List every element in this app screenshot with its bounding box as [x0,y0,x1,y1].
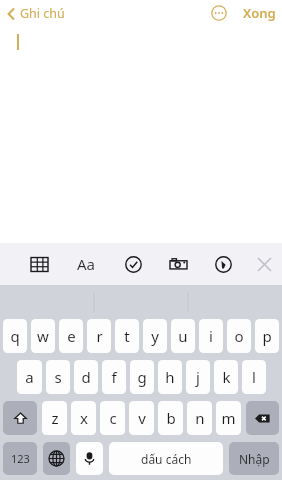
staticText: v [138,408,146,428]
button[interactable]: Xong [237,1,282,25]
button[interactable]: s [46,360,70,394]
staticText: j [196,367,200,387]
staticText: Ghi chú [20,5,65,22]
button[interactable]: q [3,319,27,353]
button[interactable]: v [129,401,154,435]
button[interactable]: p [255,319,279,353]
staticText: s [54,367,62,387]
button[interactable]: Markup [212,253,235,276]
button[interactable]: w [31,319,55,353]
button[interactable]: dấu cách [109,442,223,475]
staticText: dấu cách [141,451,192,467]
button[interactable]: Shift [3,401,37,435]
staticText: Aa [77,254,96,274]
button[interactable]: h [158,360,182,394]
button[interactable]: Switch language [43,442,70,475]
staticText: g [137,367,147,387]
button[interactable]: Close keyboard [257,257,282,272]
staticText: 123 [11,451,30,466]
button[interactable]: r [87,319,111,353]
staticText: k [222,367,231,387]
staticText: r [96,326,103,346]
button[interactable]: Checklist [122,253,145,276]
staticText: t [124,326,130,346]
button[interactable]: Table [28,253,51,276]
staticText: y [151,326,159,346]
staticText: e [67,326,76,346]
button[interactable]: g [130,360,154,394]
staticText: q [10,326,20,346]
staticText: Nhập [239,451,270,467]
button[interactable]: z [42,401,67,435]
staticText: x [80,408,88,428]
button[interactable]: Ghi chú [4,3,68,24]
button[interactable]: e [59,319,83,353]
staticText: u [178,326,188,346]
staticText: h [165,367,175,387]
button[interactable]: Camera [167,253,190,276]
button[interactable]: x [71,401,96,435]
staticText: m [221,408,236,428]
staticText: w [37,326,49,346]
staticText: n [195,408,205,428]
button[interactable]: t [115,319,139,353]
button[interactable]: i [199,319,223,353]
button[interactable]: a [17,360,42,394]
staticText: i [209,326,213,346]
button[interactable]: Aa [73,250,100,278]
button[interactable]: o [227,319,251,353]
staticText: o [234,326,244,346]
button[interactable]: l [242,360,266,394]
staticText: c [109,408,117,428]
staticText: b [166,408,176,428]
staticText: z [51,408,59,428]
button[interactable]: b [158,401,183,435]
button[interactable]: y [143,319,167,353]
button[interactable]: u [171,319,195,353]
staticText: Xong [243,4,276,22]
button[interactable]: Nhập [229,442,279,475]
staticText: f [111,367,117,387]
staticText: a [25,367,34,387]
button[interactable]: Backspace [246,401,279,435]
button[interactable]: More options [207,1,231,25]
button[interactable]: f [102,360,126,394]
button[interactable]: j [186,360,210,394]
button[interactable]: m [216,401,241,435]
button[interactable]: 123 [3,442,37,475]
button[interactable]: k [214,360,238,394]
button[interactable]: c [100,401,125,435]
staticText: p [262,326,272,346]
button[interactable]: Dictation [76,442,103,475]
staticText: d [81,367,91,387]
button[interactable]: n [187,401,212,435]
staticText: l [252,367,256,387]
button[interactable]: d [74,360,98,394]
